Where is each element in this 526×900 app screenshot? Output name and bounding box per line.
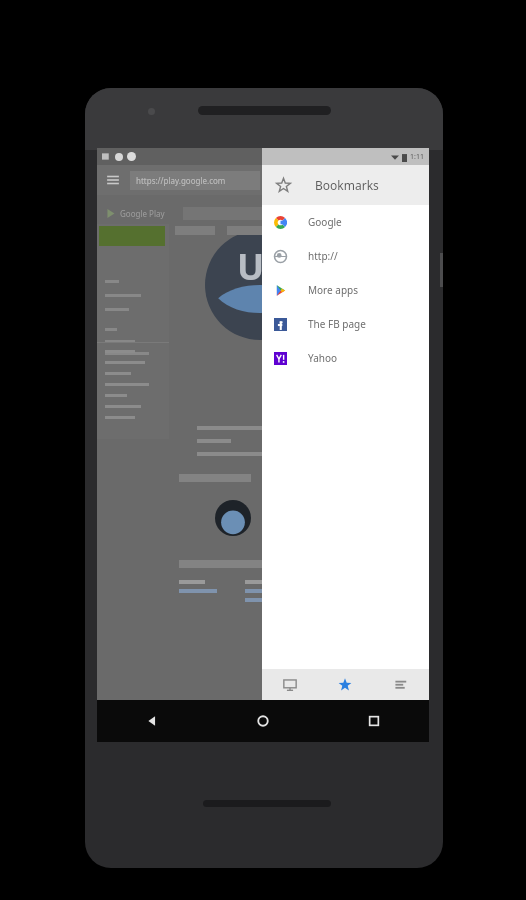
button[interactable]: Google	[262, 205, 429, 239]
button[interactable]: Desktop bookmarks	[262, 669, 317, 700]
other: Bookmarks	[276, 178, 291, 193]
staticText: The FB page	[308, 317, 366, 331]
button[interactable]: Back	[97, 700, 207, 742]
staticText: More apps	[308, 283, 358, 297]
staticText: http://healthierwayoflife.com/	[308, 249, 429, 263]
button[interactable]: Bookmarks	[317, 669, 373, 700]
button[interactable]: Home	[207, 700, 318, 742]
staticText: Google	[308, 215, 342, 229]
button[interactable]: Bookmarks	[262, 165, 429, 205]
staticText: Google Play	[120, 208, 165, 219]
button[interactable]: Recents	[318, 700, 429, 742]
button[interactable]: More apps	[262, 273, 429, 307]
button[interactable]: http://healthierwayoflife.com/	[262, 239, 429, 273]
staticText: UF	[237, 242, 284, 291]
staticText: 1:11	[410, 152, 424, 162]
staticText: Yahoo	[308, 351, 338, 365]
staticText: Bookmarks	[315, 177, 379, 193]
button[interactable]: Yahoo	[262, 341, 429, 375]
button[interactable]: History	[373, 669, 429, 700]
button[interactable]: The FB page	[262, 307, 429, 341]
staticText: https://play.google.com	[136, 175, 226, 186]
